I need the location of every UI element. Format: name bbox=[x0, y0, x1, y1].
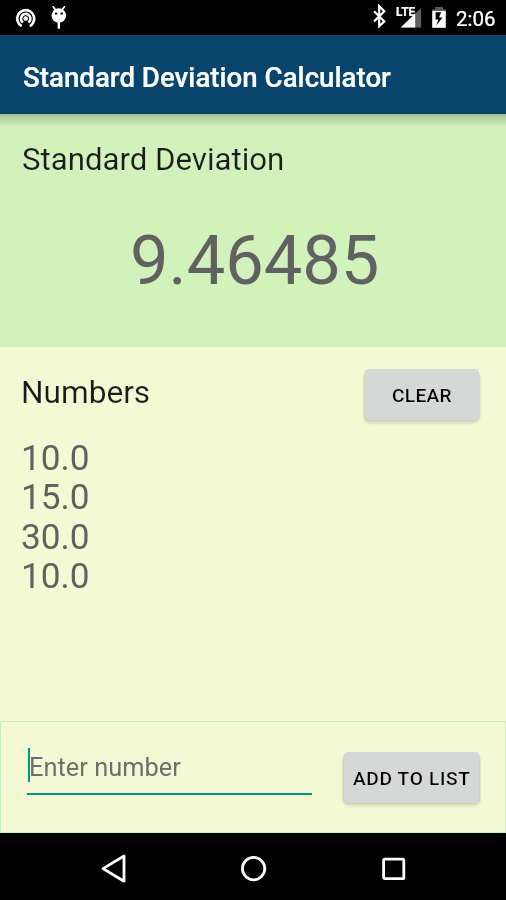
button[interactable]: Home bbox=[223, 838, 284, 896]
button[interactable]: CLEAR bbox=[365, 369, 479, 420]
button[interactable]: ADD TO LIST bbox=[344, 752, 479, 803]
staticText: Standard Deviation Calculator bbox=[23, 61, 391, 93]
button[interactable]: Back bbox=[82, 838, 143, 896]
staticText: 9.46485 bbox=[130, 220, 380, 300]
staticText: 15.0 bbox=[21, 476, 90, 517]
button[interactable]: Enter number bbox=[27, 741, 312, 795]
staticText: 30.0 bbox=[21, 516, 90, 557]
staticText: CLEAR bbox=[392, 384, 452, 406]
staticText: Standard Deviation bbox=[22, 141, 285, 178]
staticText: LTE bbox=[396, 5, 416, 19]
staticText: Enter number bbox=[29, 752, 181, 782]
staticText: 2:06 bbox=[456, 7, 496, 31]
staticText: 10.0 bbox=[21, 437, 90, 478]
staticText: ADD TO LIST bbox=[353, 767, 471, 789]
button[interactable]: Recent apps bbox=[363, 838, 424, 896]
staticText: Numbers bbox=[21, 374, 151, 411]
staticText: 10.0 bbox=[21, 555, 90, 596]
